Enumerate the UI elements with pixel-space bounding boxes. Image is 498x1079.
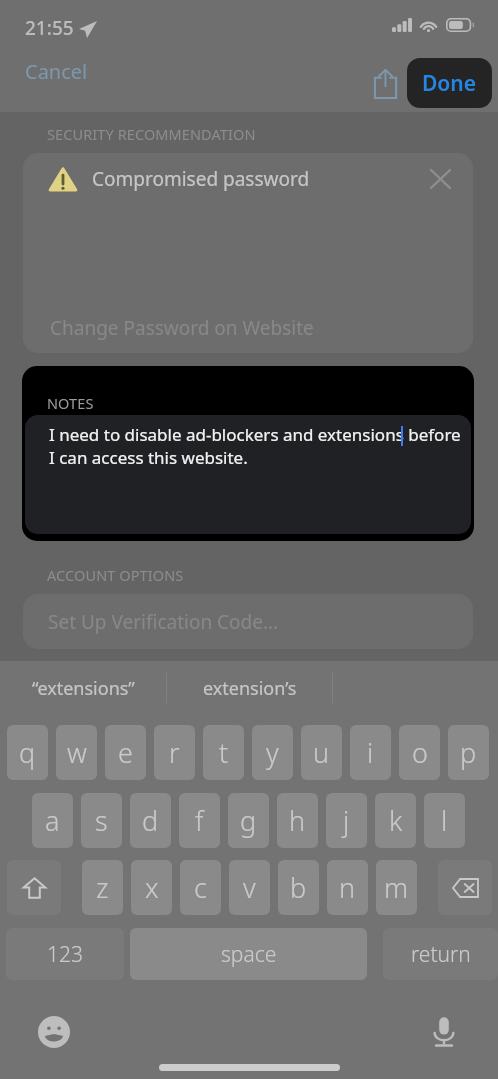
staticText: c [194,869,207,906]
button[interactable]: Done [407,58,492,108]
button[interactable]: Set Up Verification Code… [23,594,473,649]
button[interactable]: space [130,928,367,980]
staticText: e [118,734,133,771]
staticText: Done [422,69,477,98]
staticText: space [221,940,277,969]
staticText: a [45,802,60,839]
button[interactable]: Share [362,60,408,106]
button[interactable]: z [82,860,123,915]
staticText: q [19,734,36,771]
button[interactable]: Dismiss [425,164,455,194]
button[interactable]: n [327,860,368,915]
staticText: extension’s [203,676,297,701]
staticText: m [384,869,409,906]
staticText: y [266,734,279,771]
button[interactable]: w [56,725,97,780]
staticText: Cancel [25,58,88,85]
button[interactable]: t [203,725,244,780]
staticText: s [95,802,108,839]
staticText: w [67,734,87,771]
staticText: I need to disable ad-blockers and extens… [49,423,461,469]
button[interactable]: m [376,860,417,915]
button[interactable]: u [301,725,342,780]
button[interactable]: d [130,793,171,848]
staticText: SECURITY RECOMMENDATION [47,124,256,144]
staticText: Compromised password [92,166,310,192]
staticText: v [243,869,256,906]
button[interactable]: a [32,793,73,848]
staticText: b [290,869,307,906]
button[interactable]: extension’s [167,661,332,715]
button[interactable]: 123 [6,928,124,980]
staticText: NOTES [47,393,94,413]
staticText: h [289,802,306,839]
staticText: return [411,940,471,969]
button[interactable]: y [252,725,293,780]
staticText: g [240,802,257,839]
staticText: ACCOUNT OPTIONS [47,565,184,585]
button[interactable]: i [350,725,391,780]
staticText: f [195,802,204,839]
button[interactable]: return [383,928,498,980]
button[interactable]: j [326,793,367,848]
staticText: k [389,802,403,839]
staticText: j [343,802,350,839]
staticText: 123 [47,940,83,969]
staticText: Set Up Verification Code… [48,609,279,635]
staticText: t [219,734,229,771]
button[interactable]: f [179,793,220,848]
button[interactable]: Change Password on Website [23,303,473,353]
staticText: x [145,869,159,906]
staticText: “extensions” [32,676,135,701]
button[interactable]: p [448,725,489,780]
staticText: n [339,869,356,906]
button[interactable]: Dictation [423,1011,465,1053]
staticText: p [460,734,477,771]
button[interactable]: b [278,860,319,915]
staticText: l [441,802,448,839]
staticText: r [169,734,180,771]
button[interactable]: s [81,793,122,848]
button[interactable]: Backspace [438,860,492,915]
button[interactable]: Shift [7,860,61,915]
staticText: 21:55 [25,15,74,41]
button[interactable]: l [424,793,465,848]
button[interactable]: q [7,725,48,780]
staticText: i [367,734,374,771]
button[interactable]: “extensions” [0,661,166,715]
button[interactable]: e [105,725,146,780]
button[interactable]: g [228,793,269,848]
button[interactable]: r [154,725,195,780]
button[interactable]: Emoji [33,1011,75,1053]
button[interactable]: h [277,793,318,848]
button[interactable]: Cancel [0,50,113,93]
button[interactable]: o [399,725,440,780]
staticText: d [142,802,159,839]
staticText: z [96,869,109,906]
staticText: o [412,734,428,771]
button[interactable]: v [229,860,270,915]
button[interactable]: c [180,860,221,915]
staticText: Change Password on Website [50,315,314,341]
button[interactable]: x [131,860,172,915]
staticText: u [313,734,330,771]
button[interactable]: k [375,793,416,848]
